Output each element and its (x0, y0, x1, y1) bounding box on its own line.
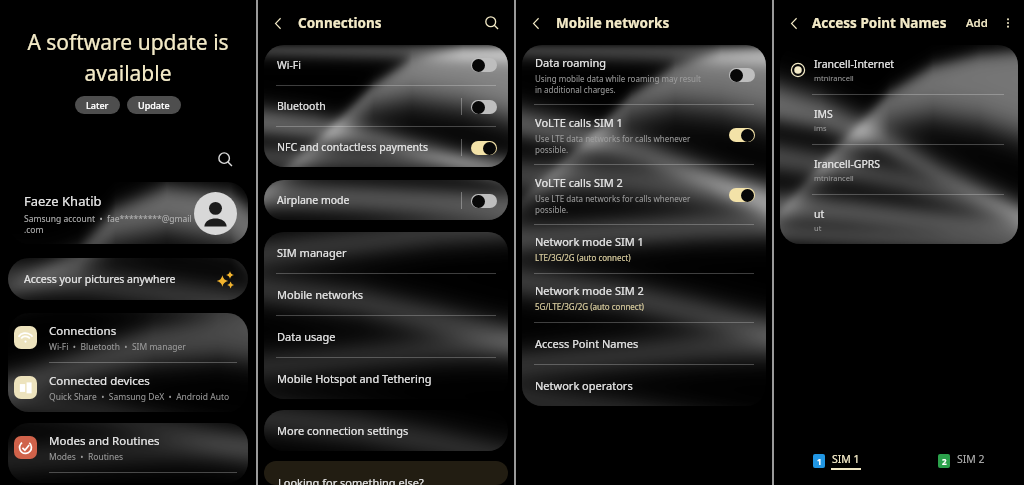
button[interactable]: Toggle (471, 194, 497, 208)
staticText: Wi-Fi (277, 58, 471, 72)
staticText: Quick Share • Samsung DeX • Android Auto (49, 391, 230, 403)
button[interactable]: Airplane mode (264, 180, 508, 220)
staticText: Access Point Names (535, 336, 639, 351)
staticText: ut (814, 223, 822, 233)
button[interactable]: Toggle (729, 68, 755, 82)
staticText: Airplane mode (277, 193, 461, 207)
button[interactable]: Mobile networks (264, 274, 508, 315)
staticText: Data usage (277, 329, 336, 344)
staticText: VoLTE calls SIM 2 (535, 175, 623, 190)
button[interactable]: 2 (930, 448, 994, 474)
button[interactable]: Toggle (729, 188, 755, 202)
staticText: IMS (814, 107, 833, 121)
staticText: NFC and contactless payments (277, 140, 461, 154)
button[interactable]: More connection settings (264, 410, 508, 451)
button[interactable]: Connections (8, 313, 248, 362)
button[interactable]: Toggle (471, 100, 497, 114)
button[interactable]: Modes and Routines (8, 423, 248, 472)
button[interactable]: Access Point Names (522, 323, 766, 364)
button[interactable]: VoLTE calls SIM 2 (522, 165, 766, 224)
staticText: mtnirancell (814, 73, 854, 83)
button[interactable]: Data usage (264, 316, 508, 357)
staticText: Update (138, 99, 170, 111)
button[interactable]: Network mode SIM 2 (522, 274, 766, 322)
staticText: VoLTE calls SIM 1 (535, 115, 623, 130)
staticText: Mobile networks (277, 287, 364, 302)
staticText: Modes • Routines (49, 451, 124, 463)
button[interactable]: Toggle (471, 58, 497, 72)
button[interactable]: Network operators (522, 365, 766, 406)
button[interactable]: Add (962, 15, 992, 31)
button[interactable]: SIM manager (264, 232, 508, 273)
staticText: Looking for something else? (278, 475, 424, 485)
button[interactable]: Irancell-Internet (780, 45, 1018, 94)
button[interactable]: NFC and contactless payments (264, 127, 508, 167)
staticText: ut (814, 207, 825, 221)
button[interactable]: Mobile Hotspot and Tethering (264, 358, 508, 399)
staticText: Wi-Fi • Bluetooth • SIM manager (49, 341, 186, 353)
staticText: Use LTE data networks for calls whenever… (535, 193, 691, 215)
button[interactable]: Back (524, 11, 548, 35)
staticText: mtnirancell (814, 173, 854, 183)
staticText: 1 (817, 456, 822, 467)
staticText: Network mode SIM 1 (535, 234, 644, 249)
button[interactable]: IMS (780, 95, 1018, 144)
button[interactable]: ut (780, 195, 1018, 244)
staticText: Using mobile data while roaming may resu… (535, 73, 701, 95)
staticText: Mobile networks (556, 14, 670, 32)
button[interactable]: Connected devices (8, 363, 248, 412)
staticText: Irancell-GPRS (814, 157, 881, 171)
staticText: More connection settings (277, 423, 409, 438)
staticText: LTE/3G/2G (auto connect) (535, 252, 631, 263)
button[interactable]: Search (213, 147, 237, 171)
staticText: Samsung account • fae*********@gmail .co… (24, 213, 192, 235)
staticText: Mobile Hotspot and Tethering (277, 371, 432, 386)
button[interactable]: Access your pictures anywhere (8, 258, 248, 300)
button[interactable]: Update (127, 96, 181, 114)
staticText: Modes and Routines (49, 433, 160, 449)
staticText: Network operators (535, 378, 633, 393)
staticText: Bluetooth (277, 99, 461, 113)
staticText: Connections (49, 323, 117, 339)
staticText: 5G/LTE/3G/2G (auto connect) (535, 301, 644, 312)
staticText: Irancell-Internet (814, 57, 895, 71)
staticText: Use LTE data networks for calls whenever… (535, 133, 691, 155)
staticText: SIM 2 (957, 452, 985, 466)
staticText: ims (814, 123, 827, 133)
staticText: Access Point Names (812, 14, 947, 32)
staticText: A software update is available (0, 28, 256, 87)
staticText: Connected devices (49, 373, 150, 389)
button[interactable]: Wi-Fi (264, 45, 508, 85)
button[interactable]: Irancell-GPRS (780, 145, 1018, 194)
staticText: Access your pictures anywhere (24, 272, 176, 286)
staticText: Connections (298, 14, 382, 32)
staticText: Faeze Khatib (24, 192, 102, 210)
button[interactable]: Toggle (471, 141, 497, 155)
button[interactable]: Faeze Khatib (8, 182, 248, 244)
button[interactable]: More options (998, 13, 1018, 33)
staticText: Network mode SIM 2 (535, 283, 644, 298)
staticText: Later (86, 99, 109, 111)
staticText: SIM manager (277, 245, 347, 260)
button[interactable]: 1 (805, 448, 869, 474)
button[interactable]: Back (266, 11, 290, 35)
staticText: Add (966, 15, 988, 31)
staticText: Data roaming (535, 55, 607, 70)
button[interactable]: Network mode SIM 1 (522, 225, 766, 273)
button[interactable]: Back (782, 11, 806, 35)
staticText: SIM 1 (832, 452, 860, 466)
button[interactable]: Search (480, 11, 504, 35)
button[interactable]: Toggle (729, 128, 755, 142)
staticText: 2 (942, 456, 947, 467)
button[interactable]: Later (75, 96, 120, 114)
button[interactable]: VoLTE calls SIM 1 (522, 105, 766, 164)
button[interactable]: Bluetooth (264, 86, 508, 126)
button[interactable]: Data roaming (522, 45, 766, 104)
